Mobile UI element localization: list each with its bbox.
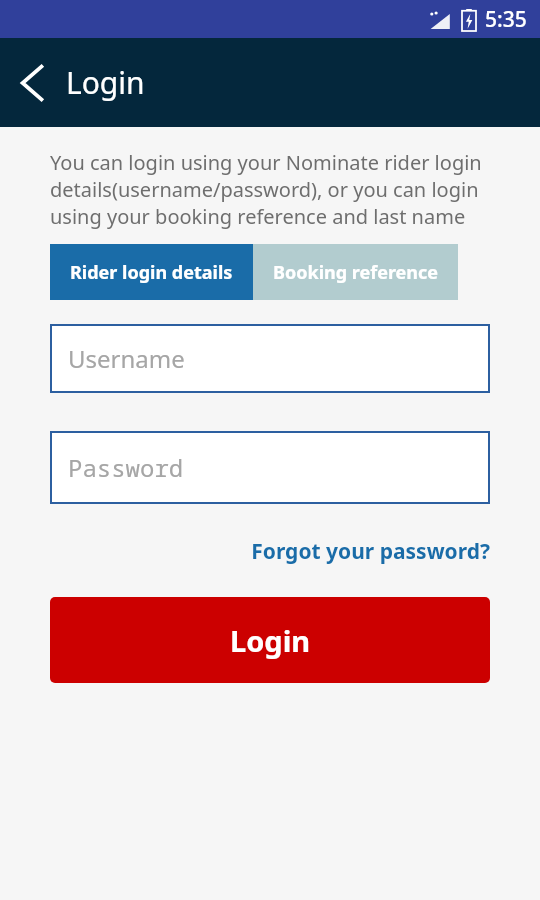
button[interactable]: Booking reference	[253, 244, 458, 300]
button[interactable]: Password	[50, 431, 490, 504]
staticText: Booking reference	[273, 260, 439, 285]
staticText: 5:35	[485, 5, 527, 34]
button[interactable]: Username	[50, 324, 490, 393]
button[interactable]: Back	[0, 38, 66, 127]
staticText: Rider login details	[70, 260, 233, 285]
staticText: Login	[66, 62, 145, 103]
staticText: Username	[68, 342, 185, 375]
staticText: Login	[230, 621, 311, 660]
staticText: Password	[68, 451, 184, 484]
button[interactable]: Forgot your password?	[251, 537, 490, 566]
button[interactable]: Rider login details	[50, 244, 253, 300]
button[interactable]: Login	[50, 597, 490, 683]
staticText: You can login using your Nominate rider …	[50, 149, 512, 230]
